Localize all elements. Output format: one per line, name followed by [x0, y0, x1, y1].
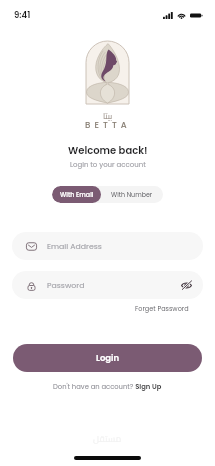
- staticText: Password: [47, 280, 85, 291]
- button[interactable]: Forget Password: [133, 302, 191, 315]
- button[interactable]: Password: [12, 271, 203, 299]
- staticText: Login: [96, 352, 120, 364]
- staticText: مستقل: [93, 430, 122, 447]
- staticText: Email Address: [47, 241, 102, 252]
- button[interactable]: Show password: [179, 278, 193, 292]
- staticText: With Number: [111, 190, 153, 199]
- staticText: 9:41: [14, 9, 31, 21]
- staticText: Login to your account: [70, 160, 146, 170]
- button[interactable]: Don't have an account? Sign Up: [51, 380, 164, 394]
- button[interactable]: Email Address: [12, 232, 203, 260]
- button[interactable]: With Email: [52, 186, 101, 203]
- staticText: With Email: [60, 190, 94, 199]
- button[interactable]: Login: [13, 344, 202, 372]
- staticText: Welcome back!: [68, 143, 148, 157]
- staticText: BETTA: [85, 119, 131, 131]
- staticText: بيتا: [103, 109, 113, 124]
- button[interactable]: With Number: [101, 186, 163, 203]
